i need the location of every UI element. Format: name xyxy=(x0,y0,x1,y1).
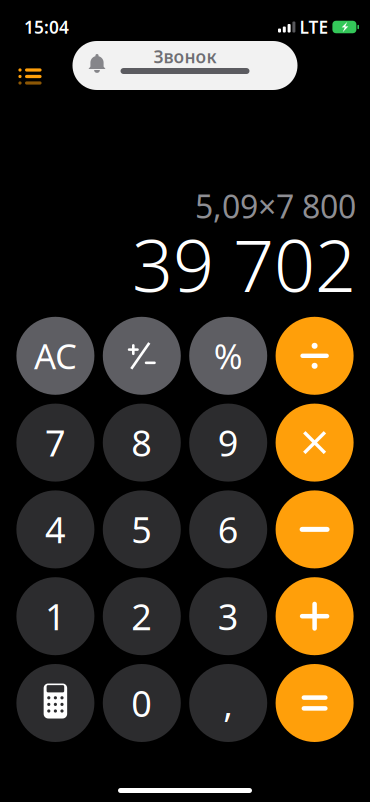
button[interactable]: Multiply xyxy=(276,404,354,482)
staticText: % xyxy=(214,333,243,379)
staticText: Звонок xyxy=(153,45,216,68)
button[interactable]: 2 xyxy=(103,577,181,655)
staticText: 9 xyxy=(218,419,239,466)
button[interactable]: Plus minus xyxy=(103,317,181,395)
button[interactable]: 3 xyxy=(189,577,267,655)
button[interactable]: History xyxy=(8,54,52,98)
button[interactable]: Subtract xyxy=(276,490,354,568)
staticText: 3 xyxy=(218,592,239,640)
staticText: 39 702 xyxy=(132,216,356,312)
button[interactable]: Equals xyxy=(276,664,354,742)
staticText: 15:04 xyxy=(24,15,69,38)
staticText: , xyxy=(223,679,233,727)
staticText: 5 xyxy=(131,505,152,553)
button[interactable]: 1 xyxy=(16,577,94,655)
button[interactable]: Calculator modes xyxy=(16,664,94,742)
button[interactable]: Divide xyxy=(276,317,354,395)
staticText: 2 xyxy=(131,592,152,640)
button[interactable]: 4 xyxy=(16,490,94,568)
staticText: 8 xyxy=(131,419,152,466)
button[interactable]: 7 xyxy=(16,404,94,482)
button[interactable]: , xyxy=(189,664,267,742)
button[interactable]: AC xyxy=(16,317,94,395)
staticText: 4 xyxy=(45,505,66,553)
button[interactable]: 9 xyxy=(189,404,267,482)
button[interactable]: % xyxy=(189,317,267,395)
button[interactable]: 5 xyxy=(103,490,181,568)
button[interactable]: 8 xyxy=(103,404,181,482)
button[interactable]: 0 xyxy=(103,664,181,742)
staticText: AC xyxy=(34,333,77,379)
staticText: 7 xyxy=(45,419,66,466)
staticText: 5,09×7 800 xyxy=(195,185,356,227)
staticText: LTE xyxy=(299,15,328,38)
staticText: 1 xyxy=(45,592,66,640)
staticText: 6 xyxy=(218,505,239,553)
button[interactable]: 6 xyxy=(189,490,267,568)
staticText: 0 xyxy=(131,679,152,727)
button[interactable]: Add xyxy=(276,577,354,655)
